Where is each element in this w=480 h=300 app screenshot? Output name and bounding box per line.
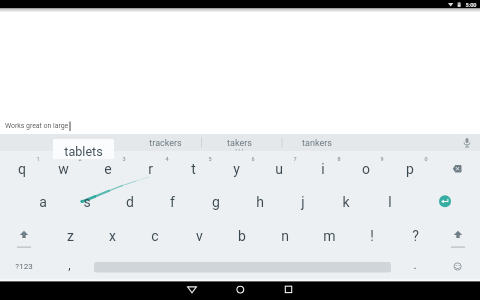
button[interactable] — [436, 152, 479, 184]
button[interactable]: h — [238, 185, 281, 218]
button[interactable]: p — [388, 153, 431, 185]
staticText: b — [238, 228, 246, 244]
button[interactable]: j — [281, 185, 324, 218]
button[interactable]: c — [134, 219, 176, 252]
button[interactable] — [436, 219, 479, 250]
button[interactable] — [53, 139, 114, 159]
staticText: f — [170, 194, 175, 210]
staticText: m — [323, 228, 336, 244]
button[interactable]: k — [324, 185, 367, 218]
button[interactable]: d — [108, 185, 151, 218]
staticText: l — [388, 194, 392, 210]
button[interactable] — [436, 252, 479, 280]
staticText: 5:00 — [465, 2, 477, 9]
staticText: n — [281, 228, 289, 244]
staticText: 9 — [380, 156, 384, 162]
staticText: takers — [227, 138, 252, 149]
button[interactable] — [220, 282, 260, 300]
staticText: u — [275, 161, 283, 177]
staticText: 6 — [251, 156, 255, 162]
button[interactable]: trackers — [127, 135, 203, 152]
button[interactable]: ?123 — [2, 251, 46, 282]
staticText: e — [104, 161, 112, 177]
button[interactable]: , — [49, 249, 89, 280]
button[interactable]: takers — [201, 135, 277, 152]
button[interactable]: w — [42, 153, 85, 185]
staticText: trackers — [149, 138, 182, 149]
button[interactable]: ? — [394, 219, 436, 252]
button[interactable]: Works great on large — [5, 119, 135, 132]
staticText: k — [342, 194, 350, 210]
staticText: ! — [370, 228, 374, 244]
staticText: p — [406, 161, 414, 177]
staticText: x — [109, 228, 116, 244]
staticText: a — [39, 194, 47, 210]
staticText: 8 — [337, 156, 341, 162]
button[interactable]: e — [86, 153, 129, 185]
staticText: t — [191, 161, 196, 177]
staticText: Works great on large — [5, 122, 69, 130]
button[interactable]: y — [215, 153, 258, 185]
staticText: 0 — [424, 156, 428, 162]
button[interactable]: a — [21, 185, 64, 218]
button[interactable]: u — [257, 153, 300, 185]
staticText: 3 — [122, 156, 126, 162]
staticText: 5 — [208, 156, 212, 162]
staticText: z — [67, 228, 74, 244]
staticText: c — [151, 228, 159, 244]
staticText: , — [68, 258, 71, 272]
button[interactable]: s — [65, 185, 108, 218]
staticText: y — [233, 161, 240, 177]
button[interactable]: t — [172, 153, 215, 185]
staticText: w — [58, 161, 69, 177]
button[interactable]: z — [49, 219, 91, 252]
staticText: 4 — [165, 156, 169, 162]
staticText: ?123 — [15, 262, 33, 271]
button[interactable] — [172, 282, 212, 300]
staticText: 7 — [293, 156, 297, 162]
button[interactable]: f — [151, 185, 194, 218]
button[interactable]: tankers — [279, 135, 355, 152]
button[interactable]: . — [395, 249, 435, 280]
staticText: h — [256, 194, 264, 210]
button[interactable] — [268, 282, 308, 300]
staticText: 2 — [78, 156, 82, 162]
button[interactable]: q — [0, 153, 43, 185]
button[interactable] — [2, 219, 46, 250]
button[interactable]: b — [221, 219, 263, 252]
staticText: q — [18, 161, 26, 177]
button[interactable]: ! — [351, 219, 393, 252]
staticText: 1 — [36, 156, 40, 162]
staticText: d — [126, 194, 134, 210]
button[interactable]: x — [91, 219, 133, 252]
staticText: s — [83, 194, 91, 210]
button[interactable]: r — [129, 153, 172, 185]
button[interactable]: o — [344, 153, 387, 185]
button[interactable]: l — [368, 185, 411, 218]
staticText: tankers — [302, 138, 332, 149]
button[interactable]: g — [194, 185, 237, 218]
staticText: . — [413, 258, 417, 272]
staticText: ? — [412, 228, 419, 244]
staticText: tablets — [64, 144, 103, 159]
button[interactable]: i — [301, 153, 344, 185]
button[interactable]: n — [264, 219, 306, 252]
staticText: i — [321, 161, 325, 177]
staticText: j — [301, 194, 305, 210]
button[interactable]: m — [308, 219, 350, 252]
button[interactable] — [424, 185, 479, 218]
button[interactable] — [94, 255, 391, 279]
staticText: g — [212, 194, 220, 210]
staticText: v — [196, 228, 203, 244]
button[interactable]: v — [178, 219, 220, 252]
staticText: o — [362, 161, 370, 177]
staticText: r — [148, 161, 153, 177]
